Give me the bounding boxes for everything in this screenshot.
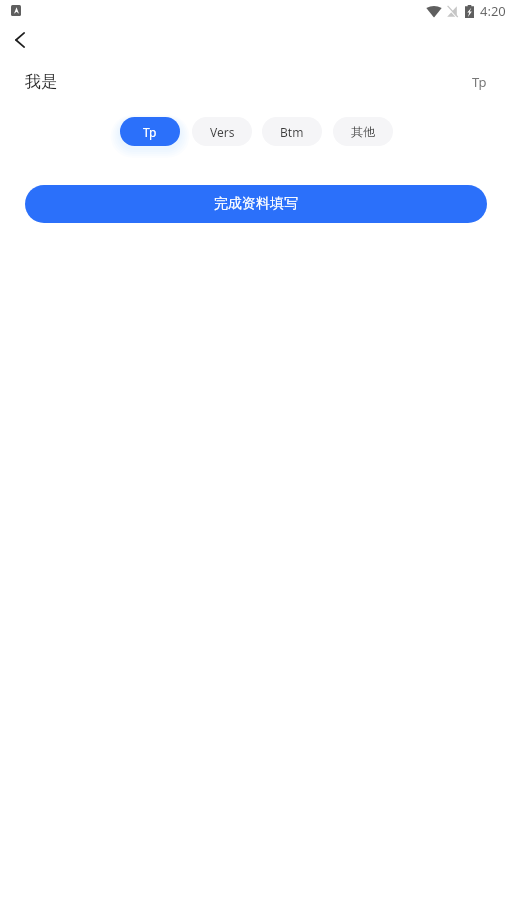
staticText: Btm: [280, 124, 304, 140]
staticText: 我是: [25, 72, 57, 92]
staticText: Vers: [210, 124, 235, 140]
staticText: Tp: [143, 124, 157, 140]
button[interactable]: Back: [6, 26, 34, 54]
button[interactable]: Tp: [120, 117, 180, 146]
staticText: 完成资料填写: [214, 195, 298, 213]
staticText: 其他: [351, 124, 375, 139]
button[interactable]: 其他: [333, 117, 393, 146]
button[interactable]: Btm: [262, 117, 322, 146]
button[interactable]: 完成资料填写: [25, 185, 487, 223]
staticText: Tp: [472, 73, 487, 91]
button[interactable]: Vers: [192, 117, 252, 146]
staticText: 4:20: [480, 2, 506, 20]
